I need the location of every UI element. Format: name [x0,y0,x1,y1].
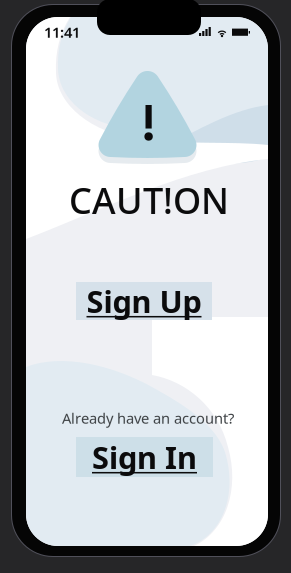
staticText: Sign Up [86,281,201,321]
staticText: CAUT!ON [69,176,229,224]
staticText: Already have an account? [62,408,234,428]
staticText: 11:41 [44,22,80,42]
button[interactable]: Sign In [76,437,213,477]
button[interactable]: Sign Up [76,282,212,320]
staticText: Sign In [92,437,197,477]
